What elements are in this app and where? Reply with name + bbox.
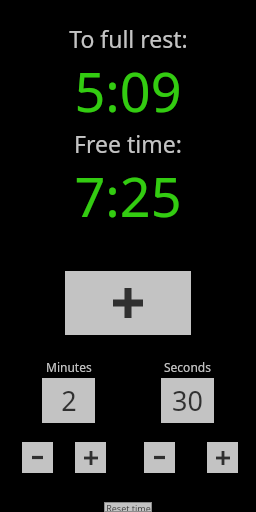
staticText: 5:09 (74, 54, 182, 128)
button[interactable]: Decrease minutes (22, 442, 53, 473)
button[interactable]: Increase seconds (207, 442, 238, 473)
button[interactable]: Increase minutes (75, 442, 106, 473)
button[interactable]: 2 (42, 378, 95, 423)
staticText: Minutes (46, 359, 92, 375)
button[interactable]: Reset time (104, 502, 152, 512)
staticText: 2 (61, 382, 77, 419)
staticText: 30 (172, 382, 203, 419)
staticText: Seconds (164, 359, 211, 375)
button[interactable]: Add time (65, 271, 191, 335)
staticText: Reset time (106, 502, 151, 512)
staticText: Free time: (74, 128, 182, 159)
button[interactable]: Decrease seconds (144, 442, 175, 473)
button[interactable]: 30 (161, 378, 214, 423)
staticText: To full rest: (69, 23, 188, 54)
staticText: 7:25 (74, 159, 182, 233)
